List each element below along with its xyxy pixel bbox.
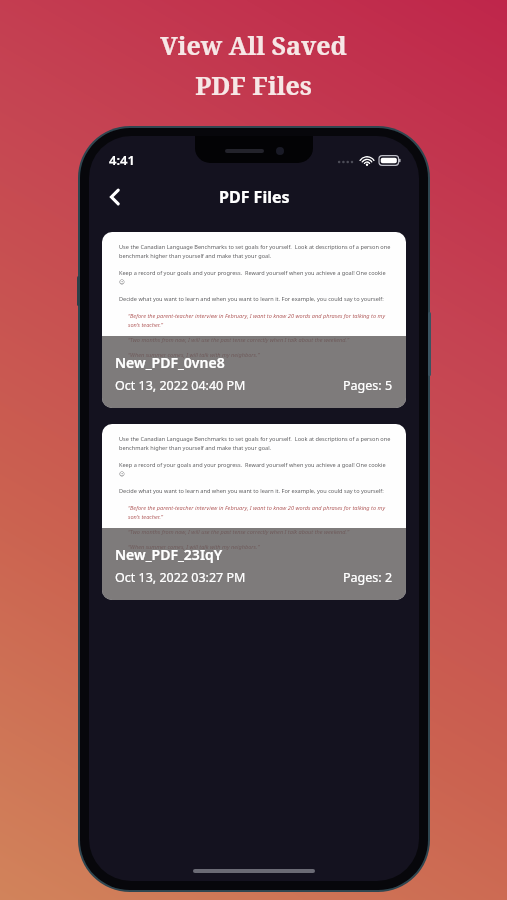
staticText: PDF Files	[195, 68, 312, 102]
staticText: Decide what you want to learn and when y…	[119, 487, 384, 495]
staticText: Pages: 2	[343, 569, 393, 586]
staticText: “Before the parent-teacher interview in …	[128, 504, 392, 521]
staticText: “When summer comes, I will talk with my …	[128, 351, 260, 359]
staticText: View All Saved	[160, 28, 347, 62]
staticText: New_PDF_23IqY	[115, 545, 223, 564]
staticText: “When summer comes, I will talk with my …	[128, 543, 260, 551]
staticText: Use the Canadian Language Benchmarks to …	[119, 435, 392, 452]
staticText: New_PDF_0vne8	[115, 353, 225, 372]
staticText: “Two months from now, I will use the pas…	[128, 528, 350, 536]
staticText: 4:41	[109, 151, 135, 169]
staticText: Use the Canadian Language Benchmarks to …	[119, 243, 392, 260]
staticText: Keep a record of your goals and your pro…	[119, 461, 392, 478]
staticText: Oct 13, 2022 03:27 PM	[115, 569, 246, 586]
staticText: Keep a record of your goals and your pro…	[119, 269, 392, 286]
staticText: PDF Files	[219, 186, 290, 208]
button[interactable]: Back	[97, 179, 133, 215]
staticText: “Two months from now, I will use the pas…	[128, 336, 350, 344]
staticText: Oct 13, 2022 04:40 PM	[115, 377, 246, 394]
staticText: Pages: 5	[343, 377, 393, 394]
button[interactable]: Use the Canadian Language Benchmarks to …	[102, 424, 406, 600]
staticText: Decide what you want to learn and when y…	[119, 295, 384, 303]
staticText: “Before the parent-teacher interview in …	[128, 312, 392, 329]
button[interactable]: Use the Canadian Language Benchmarks to …	[102, 232, 406, 408]
